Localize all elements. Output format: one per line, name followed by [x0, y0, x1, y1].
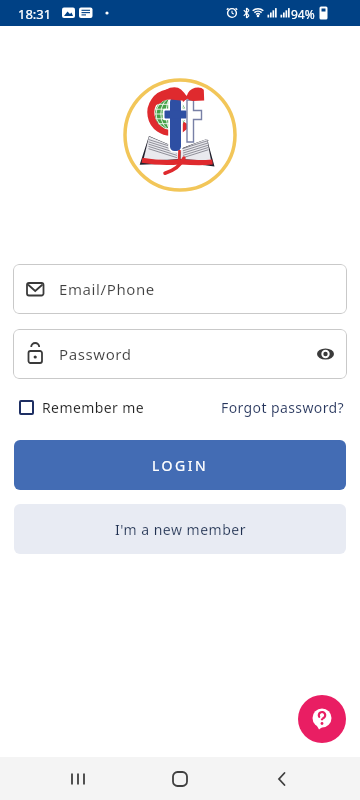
staticText: Remember me	[42, 398, 144, 417]
button[interactable]: Password	[13, 329, 347, 379]
button[interactable]	[298, 695, 346, 743]
button[interactable]: I'm a new member	[14, 504, 346, 554]
button[interactable]: LOGIN	[14, 440, 346, 490]
staticText: Forgot password?	[221, 398, 345, 417]
button[interactable]: Forgot password?	[221, 398, 345, 417]
staticText: 18:31	[18, 5, 52, 23]
button[interactable]	[27, 757, 129, 800]
button[interactable]	[129, 757, 231, 800]
button[interactable]: Remember me	[19, 398, 144, 417]
staticText: I'm a new member	[115, 520, 246, 539]
button[interactable]: Email/Phone	[13, 264, 347, 314]
button[interactable]	[231, 757, 333, 800]
staticText: Email/Phone	[59, 279, 155, 299]
staticText: LOGIN	[152, 456, 209, 475]
staticText: 94%	[291, 6, 315, 22]
staticText: Password	[59, 344, 132, 364]
